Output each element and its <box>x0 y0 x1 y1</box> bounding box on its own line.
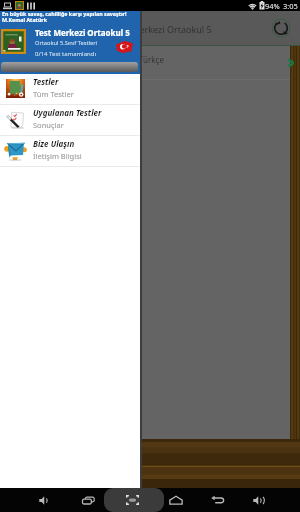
staticText: Bize Ulaşın <box>33 138 75 149</box>
staticText: Uygulanan Testler <box>33 107 102 118</box>
staticText: Sonuçlar <box>33 120 64 130</box>
staticText: Türkçe <box>139 54 164 65</box>
staticText: M.Kemal Atatürk <box>2 16 47 23</box>
button[interactable]: Refresh <box>270 17 292 39</box>
button[interactable]: Volume up <box>247 488 269 512</box>
button[interactable]: Volume down <box>33 488 55 512</box>
staticText: Tüm Testler <box>33 89 74 99</box>
staticText: 3:05 <box>283 1 298 11</box>
other: Home <box>167 491 185 509</box>
staticText: İletişim Bilgisi <box>33 151 82 161</box>
staticText: Ortaokul 5.Sınıf Testleri <box>35 39 97 47</box>
other: Volume up <box>249 491 267 509</box>
other: Volume down <box>35 491 53 509</box>
button[interactable]: Home <box>165 488 187 512</box>
staticText: Testler <box>33 76 59 87</box>
button[interactable]: Testler <box>0 74 140 104</box>
other: Fullscreen <box>123 491 141 509</box>
button[interactable]: Back <box>207 488 229 512</box>
staticText: 0/14 Test tamamlandı <box>35 50 96 58</box>
staticText: Test Merkezi Ortaokul 5 <box>35 27 130 38</box>
button[interactable]: Uygulanan Testler <box>0 105 140 135</box>
other: Recents <box>79 491 97 509</box>
button[interactable]: Bize Ulaşın <box>0 136 140 166</box>
button[interactable]: Recents <box>77 488 99 512</box>
staticText: En büyük savaş, cahilliğe karşı yapılan … <box>2 10 127 17</box>
staticText: 94% <box>265 1 280 11</box>
other: Back <box>209 491 227 509</box>
button[interactable]: Fullscreen <box>121 488 143 512</box>
staticText: Test Merkezi Ortaokul 5 <box>112 23 212 35</box>
